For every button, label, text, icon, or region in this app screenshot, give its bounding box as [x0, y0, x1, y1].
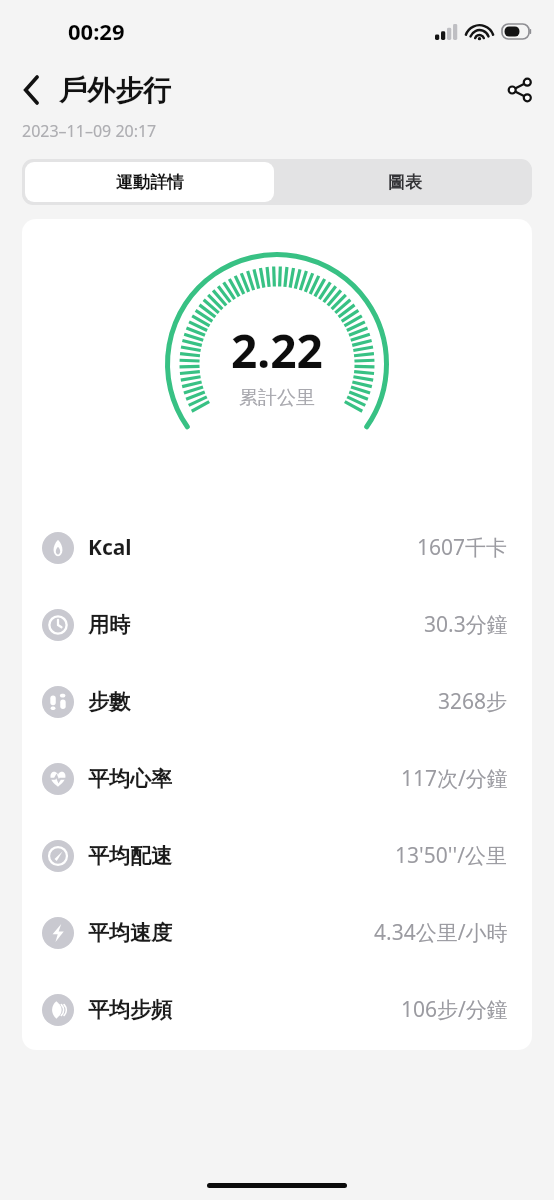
staticText: 用時: [88, 612, 130, 638]
staticText: 30.3分鐘: [424, 610, 508, 639]
button[interactable]: 用時: [22, 586, 532, 663]
staticText: 2023–11–09 20:17: [22, 120, 157, 142]
button[interactable]: 步數: [22, 663, 532, 740]
staticText: 平均速度: [88, 920, 172, 946]
staticText: 3268步: [438, 687, 508, 716]
button[interactable]: 運動詳情: [25, 162, 274, 202]
button[interactable]: Kcal: [22, 509, 532, 586]
staticText: 4.34公里/小時: [374, 918, 508, 947]
button[interactable]: 平均步頻: [22, 971, 532, 1048]
button[interactable]: Share: [496, 66, 544, 114]
staticText: Kcal: [88, 533, 132, 562]
staticText: 步數: [88, 689, 130, 715]
staticText: 117次/分鐘: [401, 764, 508, 793]
button[interactable]: 平均心率: [22, 740, 532, 817]
staticText: 13'50''/公里: [395, 841, 508, 870]
staticText: 圖表: [388, 172, 422, 193]
staticText: 2.22: [231, 319, 323, 382]
staticText: 平均步頻: [88, 997, 172, 1023]
staticText: 累計公里: [239, 386, 315, 410]
button[interactable]: 圖表: [277, 159, 532, 205]
button[interactable]: 平均配速: [22, 817, 532, 894]
button[interactable]: 平均速度: [22, 894, 532, 971]
button[interactable]: Back: [10, 68, 54, 112]
staticText: 00:29: [68, 16, 125, 46]
staticText: 106步/分鐘: [401, 995, 508, 1024]
staticText: 戶外步行: [59, 73, 171, 108]
staticText: 平均心率: [88, 766, 172, 792]
staticText: 運動詳情: [116, 172, 184, 193]
staticText: 1607千卡: [417, 533, 508, 562]
staticText: 平均配速: [88, 843, 172, 869]
